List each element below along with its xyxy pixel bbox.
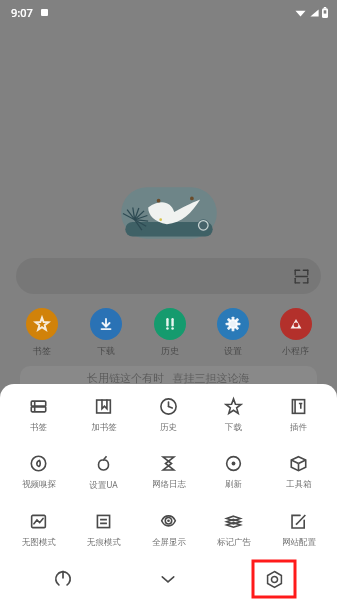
button[interactable]: 书签 [6,397,71,433]
button[interactable]: 刷新 [201,454,266,490]
staticText: 标记广告 [217,537,251,548]
staticText: 长用链这个有时 喜挂三担这论海 [87,370,250,385]
staticText: 全屏显示 [152,537,186,548]
staticText: 下载 [97,345,115,356]
button[interactable]: 设置 [201,308,264,356]
staticText: 9:07 [11,5,33,20]
button[interactable]: 书签 [10,308,74,356]
button[interactable]: 无图模式 [6,512,71,548]
staticText: 书签 [33,345,51,356]
staticText: 设置 [224,345,242,356]
button[interactable]: 视频嗅探 [6,454,71,490]
button[interactable]: 全屏显示 [136,512,201,548]
staticText: 书签 [30,422,47,433]
button[interactable]: 历史 [138,308,201,356]
button[interactable]: 网站配置 [266,512,331,548]
button[interactable]: Settings [253,561,295,597]
staticText: 下载 [225,422,242,433]
staticText: 网络日志 [152,479,186,490]
button[interactable]: 插件 [266,397,331,433]
staticText: 无图模式 [22,537,56,548]
staticText: 刷新 [225,479,242,490]
staticText: 视频嗅探 [22,479,56,490]
button[interactable]: Exit [10,559,115,599]
staticText: 无痕模式 [87,537,121,548]
button[interactable]: 设置UA [71,454,136,491]
button[interactable]: Scan QR code [16,258,321,294]
staticText: 设置UA [89,479,118,491]
button[interactable]: 下载 [74,308,138,356]
button[interactable]: 无痕模式 [71,512,136,548]
staticText: 历史 [161,345,179,356]
staticText: 工具箱 [286,479,312,490]
staticText: 加书签 [91,422,117,433]
button[interactable]: 下载 [201,397,266,433]
button[interactable]: 历史 [136,397,201,433]
button[interactable]: Collapse [115,559,221,599]
button[interactable]: 标记广告 [201,512,266,548]
button[interactable]: 工具箱 [266,454,331,490]
staticText: 历史 [160,422,177,433]
staticText: 插件 [290,422,307,433]
button[interactable]: 网络日志 [136,454,201,490]
button[interactable]: 小程序 [264,308,327,356]
staticText: 网站配置 [282,537,316,548]
button[interactable]: 加书签 [71,397,136,433]
staticText: 小程序 [282,345,309,356]
other: Scan QR code [294,269,309,284]
